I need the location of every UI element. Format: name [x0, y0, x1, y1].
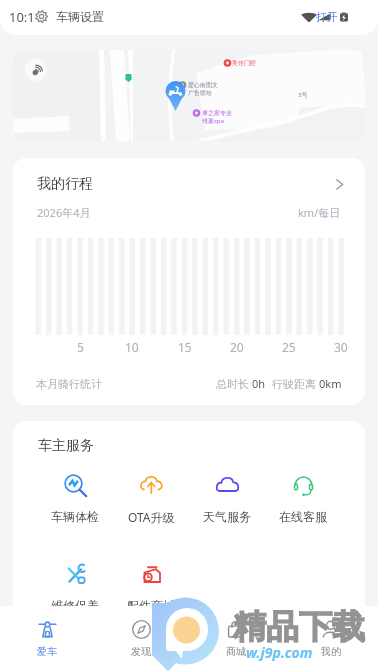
staticText: 20 — [230, 339, 244, 355]
staticText: 30 — [334, 339, 348, 355]
staticText: 精品下载 — [233, 606, 365, 648]
staticText: km/每日 — [298, 205, 341, 220]
button[interactable]: 定位 — [25, 59, 47, 81]
button[interactable]: 车辆体检 — [37, 473, 113, 524]
staticText: 总时长 — [216, 376, 252, 391]
staticText: 车辆体检 — [51, 509, 99, 524]
staticText: 打开 — [316, 10, 338, 24]
staticText: OTA升级 — [128, 509, 175, 525]
staticText: 维薯spa — [202, 117, 224, 125]
staticText: 天气服务 — [203, 509, 251, 524]
staticText: 0h — [252, 376, 266, 391]
staticText: 0km — [319, 376, 342, 391]
staticText: 摩之家专业 — [202, 109, 232, 117]
button[interactable]: 维修保养 — [37, 562, 113, 613]
button[interactable]: OTA升级 — [113, 473, 189, 525]
staticText: 商城 — [226, 645, 246, 658]
button[interactable]: 我的 — [283, 606, 378, 672]
staticText: 25 — [282, 339, 296, 355]
staticText: 广告喷绘 — [188, 89, 212, 97]
staticText: 爱车 — [37, 645, 57, 658]
staticText: 我的行程 — [37, 175, 93, 193]
staticText: w.j9p.com — [246, 643, 313, 662]
button[interactable]: 商城 — [188, 606, 283, 672]
staticText: 2026年4月 — [37, 205, 91, 220]
button[interactable]: 美佳门腔 — [13, 50, 365, 141]
staticText: 我的 — [321, 645, 341, 658]
staticText: 10:1 — [9, 8, 35, 26]
staticText: 3号 — [298, 91, 308, 99]
staticText: 美佳门腔 — [232, 59, 256, 67]
staticText: 维修保养 — [51, 598, 99, 613]
button[interactable]: 爱车 — [0, 606, 94, 672]
button[interactable]: 发现 — [94, 606, 188, 672]
staticText: 在线客服 — [279, 509, 327, 524]
button[interactable]: 天气服务 — [189, 473, 265, 524]
staticText: 配件商城 — [127, 598, 175, 613]
staticText: 爱心南图文 — [188, 81, 218, 89]
staticText: 车辆设置 — [56, 9, 104, 24]
staticText: 10 — [125, 339, 139, 355]
button[interactable]: 配件商城 — [113, 562, 189, 613]
staticText: 本月骑行统计 — [36, 377, 102, 391]
staticText: 车主服务 — [38, 437, 94, 455]
staticText: 15 — [178, 339, 192, 355]
staticText: 行驶距离 — [272, 376, 319, 391]
staticText: 5 — [77, 339, 84, 355]
button[interactable]: 在线客服 — [265, 473, 341, 524]
staticText: 发现 — [131, 645, 151, 658]
button[interactable]: 我的行程 — [13, 175, 365, 193]
